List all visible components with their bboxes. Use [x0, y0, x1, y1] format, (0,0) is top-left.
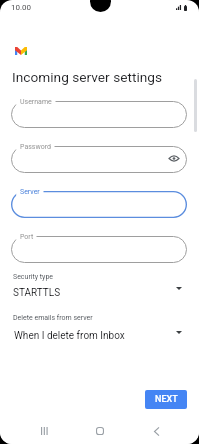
button[interactable]: Server	[11, 191, 187, 218]
staticText: Security type	[13, 273, 54, 281]
staticText: Password	[20, 143, 51, 151]
button[interactable]: NEXT	[145, 390, 187, 409]
staticText: 10.00	[11, 3, 32, 12]
button[interactable]: Recent apps	[32, 419, 56, 443]
button[interactable]: Home	[88, 419, 112, 443]
staticText: Server	[20, 188, 40, 196]
staticText: STARTTLS	[13, 287, 61, 299]
staticText: Username	[20, 98, 52, 106]
button[interactable]: Back	[144, 419, 168, 443]
staticText: Port	[20, 233, 34, 241]
staticText: Delete emails from server	[13, 314, 93, 322]
button[interactable]: Password	[11, 146, 187, 173]
button[interactable]: Delete emails from server	[0, 308, 199, 340]
button[interactable]: Port	[11, 236, 187, 263]
button[interactable]: Username	[11, 101, 187, 128]
button[interactable]: Security type	[0, 267, 199, 299]
staticText: When I delete from Inbox	[14, 330, 125, 342]
staticText: NEXT	[155, 394, 178, 405]
staticText: Incoming server settings	[12, 69, 163, 85]
button[interactable]: Show password	[164, 148, 184, 168]
